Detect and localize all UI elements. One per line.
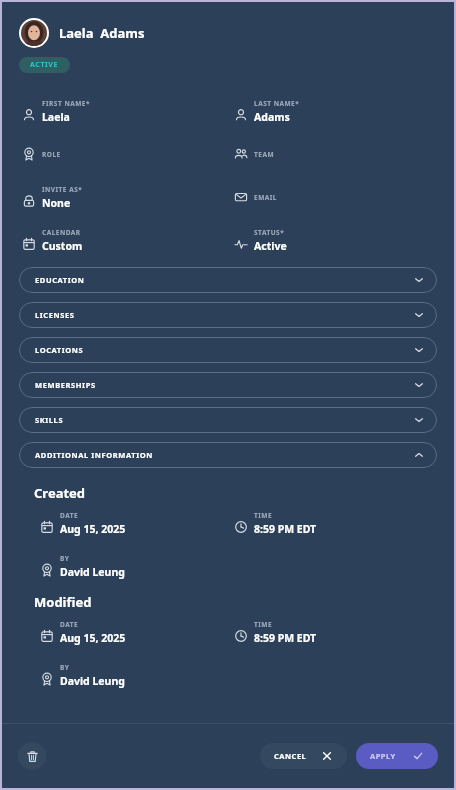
staticText: LAST NAME* [254, 99, 300, 108]
staticText: Aug 15, 2025 [60, 631, 126, 645]
staticText: STATUS* [254, 228, 285, 237]
staticText: BY [60, 554, 70, 563]
staticText: LICENSES [35, 310, 75, 320]
staticText: MEMBERSHIPS [35, 380, 96, 390]
staticText: Laela [42, 110, 70, 124]
staticText: SKILLS [35, 415, 64, 425]
button[interactable]: MEMBERSHIPS [19, 372, 437, 398]
staticText: APPLY [370, 751, 396, 761]
staticText: BY [60, 663, 70, 672]
button[interactable]: SKILLS [19, 407, 437, 433]
staticText: Created [34, 484, 86, 502]
staticText: DATE [60, 620, 79, 629]
staticText: ROLE [42, 150, 61, 159]
staticText: Aug 15, 2025 [60, 522, 126, 536]
staticText: CANCEL [274, 751, 307, 761]
staticText: FIRST NAME* [42, 99, 90, 108]
button[interactable]: CANCEL [260, 743, 347, 769]
staticText: Custom [42, 239, 83, 253]
staticText: David Leung [60, 565, 125, 579]
button[interactable]: ADDITIONAL INFORMATION [19, 442, 437, 468]
staticText: None [42, 196, 71, 210]
staticText: 8:59 PM EDT [254, 631, 317, 645]
button[interactable]: LICENSES [19, 302, 437, 328]
staticText: EDUCATION [35, 275, 85, 285]
staticText: INVITE AS* [42, 185, 83, 194]
staticText: TIME [254, 511, 273, 520]
staticText: LOCATIONS [35, 345, 84, 355]
staticText: CALENDAR [42, 228, 81, 237]
button[interactable]: LOCATIONS [19, 337, 437, 363]
staticText: TIME [254, 620, 273, 629]
button[interactable]: EDUCATION [19, 267, 437, 293]
staticText: Active [254, 239, 287, 253]
staticText: Modified [34, 593, 92, 611]
staticText: DATE [60, 511, 79, 520]
staticText: EMAIL [254, 193, 277, 202]
staticText: Laela Adams [59, 24, 145, 42]
button[interactable]: ACTIVE [19, 57, 70, 73]
staticText: Adams [254, 110, 290, 124]
staticText: ACTIVE [30, 60, 59, 70]
staticText: TEAM [254, 150, 275, 159]
staticText: David Leung [60, 674, 125, 688]
staticText: 8:59 PM EDT [254, 522, 317, 536]
staticText: ADDITIONAL INFORMATION [35, 450, 153, 460]
button[interactable]: Delete [18, 742, 46, 770]
button[interactable]: APPLY [356, 743, 438, 769]
